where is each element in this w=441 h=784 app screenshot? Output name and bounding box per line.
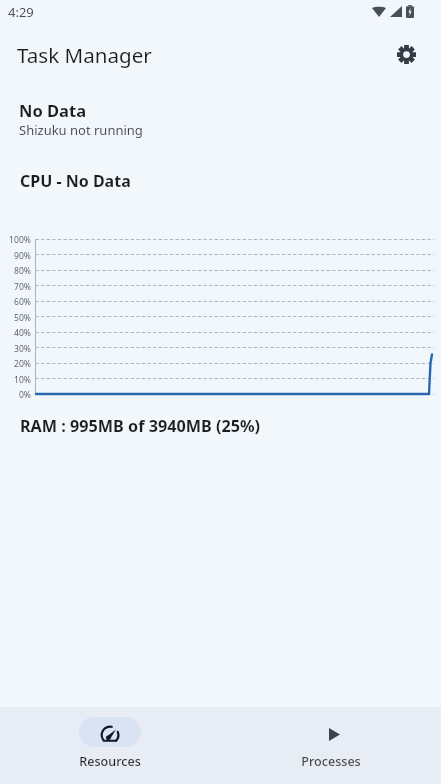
button[interactable]: Settings <box>384 32 428 76</box>
staticText: 50% <box>14 312 31 324</box>
button[interactable]: Resources <box>0 707 220 784</box>
staticText: CPU - No Data <box>20 170 131 192</box>
staticText: 10% <box>14 374 31 386</box>
staticText: 0% <box>18 389 31 401</box>
staticText: 100% <box>9 234 31 246</box>
staticText: 40% <box>14 327 31 339</box>
staticText: 90% <box>14 250 31 262</box>
staticText: Processes <box>301 753 361 770</box>
staticText: No Data <box>19 99 87 121</box>
staticText: 30% <box>14 343 31 355</box>
staticText: RAM : 995MB of 3940MB (25%) <box>20 415 261 437</box>
staticText: 80% <box>14 265 31 277</box>
button[interactable]: Processes <box>220 707 441 784</box>
staticText: 20% <box>14 358 31 370</box>
staticText: Resources <box>79 753 141 770</box>
staticText: 60% <box>14 296 31 308</box>
staticText: 70% <box>14 281 31 293</box>
staticText: Shizuku not running <box>19 121 143 139</box>
staticText: Task Manager <box>17 41 152 69</box>
staticText: 4:29 <box>8 3 34 21</box>
